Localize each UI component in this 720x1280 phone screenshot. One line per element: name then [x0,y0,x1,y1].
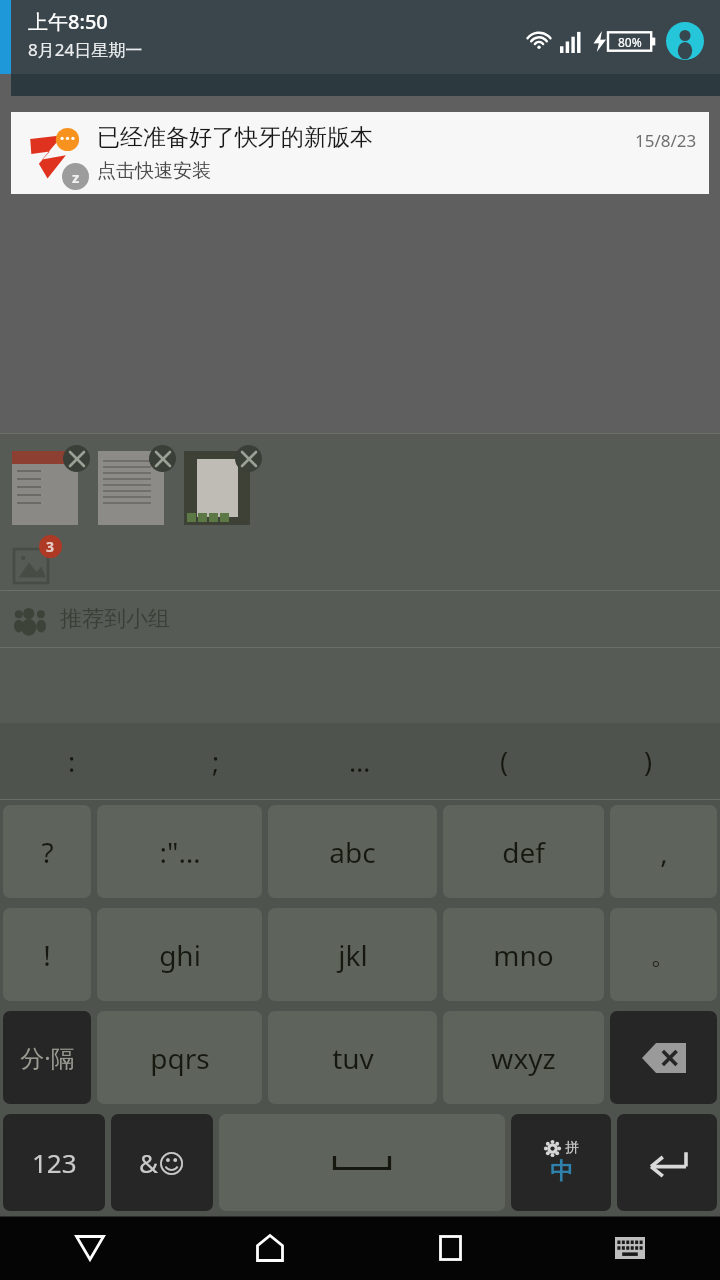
staticText: 。 [650,937,678,972]
staticText: ) [644,743,653,780]
button[interactable]: Home [180,1216,360,1280]
button[interactable]: Remove attachment [63,445,90,472]
staticText: ! [43,936,51,974]
staticText: wxyz [491,1039,556,1077]
staticText: , [660,833,668,871]
staticText: 123 [32,1145,77,1180]
button[interactable]: wxyz [443,1011,604,1104]
staticText: tuv [332,1039,374,1077]
staticText: &☺ [139,1145,186,1180]
staticText: : [68,743,76,780]
staticText: z [72,167,80,187]
staticText: :"… [159,833,201,871]
staticText: ghi [159,936,201,974]
staticText: 点击快速安装 [97,159,211,183]
staticText: 推荐到小组 [60,605,170,633]
button[interactable]: 分·隔 [3,1011,91,1104]
button[interactable]: Remove attachment [149,445,176,472]
button[interactable]: ( [432,723,576,799]
button[interactable]: def [443,805,604,898]
staticText: 中 [550,1157,573,1186]
staticText: jkl [338,936,368,974]
staticText: ( [500,743,509,780]
button[interactable]: Recent apps [360,1216,540,1280]
staticText: 3 [46,537,55,556]
staticText: ? [41,833,54,871]
button[interactable]: jkl [268,908,437,1001]
button[interactable]: Screenshot preview [98,451,164,525]
button[interactable]: ) [576,723,720,799]
button[interactable]: :"… [97,805,262,898]
staticText: ; [212,743,220,780]
button[interactable]: ! [3,908,91,1001]
button[interactable]: Back [0,1216,180,1280]
button[interactable]: Remove attachment [235,445,262,472]
staticText: def [502,833,545,871]
staticText: 分·隔 [20,1041,75,1074]
button[interactable]: Screenshot preview [184,451,250,525]
button[interactable]: ? [3,805,91,898]
staticText: 8月24日星期一 [28,38,143,61]
staticText: abc [329,833,376,871]
button[interactable]: Attached images, 3 [14,535,62,583]
button[interactable]: Backspace [610,1011,717,1104]
button[interactable]: mno [443,908,604,1001]
staticText: … [349,743,371,780]
button[interactable]: 123 [3,1114,105,1211]
staticText: 15/8/23 [635,129,697,152]
button[interactable]: pqrs [97,1011,262,1104]
staticText: pqrs [150,1039,210,1077]
button[interactable]: &☺ [111,1114,213,1211]
staticText: 上午8:50 [28,8,108,35]
staticText: 80% [618,34,642,50]
button[interactable]: 推荐到小组 [0,591,720,647]
button[interactable]: Screenshot preview [12,451,78,525]
button[interactable]: abc [268,805,437,898]
button[interactable]: tuv [268,1011,437,1104]
staticText: 已经准备好了快牙的新版本 [97,123,373,152]
button[interactable]: Space [219,1114,505,1211]
button[interactable]: Switch input language [511,1114,611,1211]
button[interactable]: Enter [617,1114,717,1211]
button[interactable]: z [11,112,709,194]
button[interactable]: ghi [97,908,262,1001]
staticText: mno [493,936,554,974]
button[interactable]: User profile [666,22,704,60]
button[interactable]: Switch keyboard [540,1216,720,1280]
staticText: 拼 [565,1139,579,1157]
